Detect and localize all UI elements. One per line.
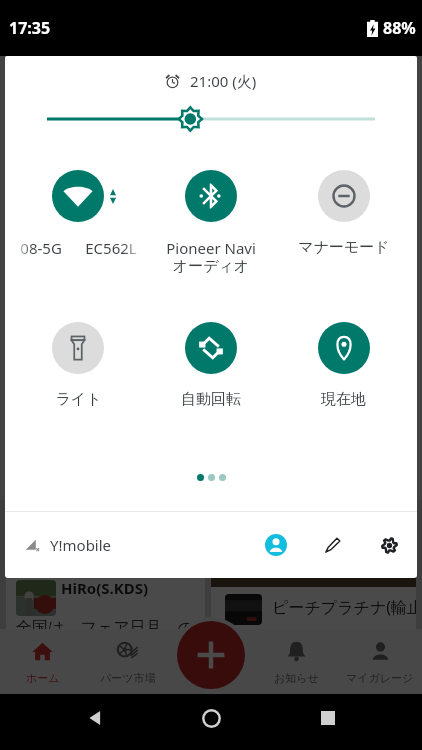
staticText: 88% bbox=[383, 17, 416, 39]
button[interactable]: パーツ市場 bbox=[85, 629, 170, 694]
button[interactable]: Edit bbox=[314, 526, 352, 564]
button[interactable]: User bbox=[257, 526, 295, 564]
button[interactable]: Y!mobile bbox=[25, 512, 112, 578]
button[interactable]: HiRo(S.KDS) bbox=[6, 500, 205, 629]
button[interactable]: Brightness bbox=[47, 102, 375, 136]
staticText: パーツ市場 bbox=[100, 671, 156, 685]
staticText: ホーム bbox=[26, 671, 60, 685]
staticText: 21:00 (火) bbox=[190, 71, 257, 91]
staticText: 08-5G EC562L bbox=[20, 238, 137, 258]
button[interactable]: ホーム bbox=[0, 629, 85, 694]
button[interactable]: Recents bbox=[306, 696, 350, 740]
button[interactable]: Location bbox=[277, 322, 410, 409]
button[interactable]: Do not disturb bbox=[277, 170, 410, 257]
button[interactable]: Wi-Fi bbox=[12, 170, 144, 258]
button[interactable]: Back bbox=[73, 696, 117, 740]
staticText: Pioneer Navi オーディオ bbox=[166, 238, 256, 276]
button[interactable]: Bluetooth bbox=[144, 170, 277, 276]
button[interactable]: Home bbox=[189, 696, 233, 740]
button[interactable]: Settings bbox=[370, 526, 408, 564]
button[interactable]: お知らせ bbox=[254, 629, 338, 694]
staticText: ライト bbox=[55, 390, 102, 409]
staticText: 17:35 bbox=[9, 17, 51, 39]
button[interactable]: Flashlight bbox=[12, 322, 144, 409]
staticText: Y!mobile bbox=[50, 535, 112, 555]
button[interactable]: Add bbox=[177, 621, 245, 689]
staticText: 現在地 bbox=[321, 390, 366, 409]
staticText: マナーモード bbox=[298, 238, 390, 257]
staticText: お知らせ bbox=[274, 671, 319, 685]
button[interactable]: マイガレージ bbox=[338, 629, 422, 694]
button[interactable]: ピーチプラチナ(輸止... bbox=[211, 500, 416, 629]
button[interactable]: Auto rotate bbox=[144, 322, 277, 409]
staticText: 全国は、フェア日月、のきく bbox=[16, 618, 215, 660]
staticText: ピーチプラチナ(輸止... bbox=[272, 596, 422, 618]
staticText: HiRo(S.KDS) bbox=[61, 578, 149, 598]
staticText: マイガレージ bbox=[346, 671, 414, 685]
staticText: 自動回転 bbox=[181, 390, 241, 409]
